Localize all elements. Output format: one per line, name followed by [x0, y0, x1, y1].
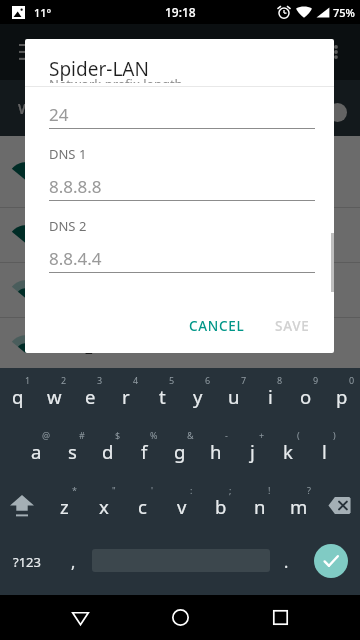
staticText: t	[159, 384, 166, 409]
staticText: Spider-LAN	[54, 153, 133, 173]
button[interactable]: @	[18, 423, 54, 478]
staticText: Spider-LAN	[49, 56, 149, 82]
staticText: ?	[307, 484, 311, 496]
staticText: p	[336, 384, 348, 409]
button[interactable]: CANCEL	[181, 309, 253, 343]
button[interactable]: Back	[58, 595, 102, 640]
staticText: o	[300, 384, 312, 409]
staticText: -	[225, 429, 228, 441]
staticText: 5	[169, 374, 175, 386]
button[interactable]: 3	[72, 368, 108, 423]
button[interactable]: Backspace	[318, 478, 360, 533]
button[interactable]: ,	[54, 533, 92, 588]
staticText: 4	[133, 374, 139, 386]
staticText: n	[254, 494, 266, 519]
staticText: )	[333, 429, 336, 441]
button[interactable]: 2	[36, 368, 72, 423]
staticText: u	[228, 384, 240, 409]
staticText: k	[283, 439, 293, 464]
staticText: $	[115, 429, 121, 441]
staticText: .	[284, 551, 289, 573]
staticText: :	[190, 484, 193, 496]
staticText: q	[12, 384, 24, 409]
staticText: 8	[277, 374, 283, 386]
staticText: m	[290, 494, 308, 519]
staticText: c	[138, 494, 147, 519]
staticText: @	[42, 429, 51, 441]
staticText: g	[174, 439, 186, 464]
staticText: 19:18	[165, 4, 196, 20]
button[interactable]: SAVE	[267, 309, 318, 343]
staticText: DNS 1	[49, 145, 87, 163]
staticText: Wi-Fi	[18, 98, 53, 118]
button[interactable]: More options	[320, 36, 352, 68]
button[interactable]: #	[54, 423, 90, 478]
staticText: h	[210, 439, 222, 464]
button[interactable]: 0	[324, 368, 360, 423]
staticText: x	[99, 494, 109, 519]
staticText: ;	[229, 484, 232, 496]
staticText: 2	[61, 374, 67, 386]
button[interactable]: )	[306, 423, 342, 478]
button[interactable]: $	[90, 423, 126, 478]
staticText: ?123	[13, 553, 41, 571]
staticText: 7	[241, 374, 247, 386]
staticText: r	[122, 384, 130, 409]
staticText: 3	[97, 374, 103, 386]
button[interactable]: !	[240, 478, 279, 533]
button[interactable]: *	[44, 478, 84, 533]
staticText: #	[79, 429, 85, 441]
button[interactable]: ;	[201, 478, 240, 533]
button[interactable]: &	[162, 423, 198, 478]
staticText: s	[68, 439, 77, 464]
staticText: b	[215, 494, 227, 519]
button[interactable]: Home	[158, 595, 202, 640]
button[interactable]: 7	[216, 368, 252, 423]
staticText: "	[112, 484, 116, 496]
staticText: CANCEL	[189, 317, 245, 335]
button[interactable]: "	[84, 478, 123, 533]
staticText: SAVE	[275, 317, 310, 335]
button[interactable]: Shift	[0, 478, 44, 533]
staticText: 9	[313, 374, 319, 386]
button[interactable]: 5	[144, 368, 180, 423]
staticText: l	[322, 439, 327, 464]
button[interactable]: Recent apps	[258, 595, 302, 640]
button[interactable]: 6	[180, 368, 216, 423]
staticText: TP-Link_4A2	[54, 391, 139, 411]
button[interactable]: :	[162, 478, 201, 533]
staticText: y	[193, 384, 203, 409]
button[interactable]: +	[234, 423, 270, 478]
staticText: w	[47, 384, 62, 409]
staticText: Cafe_Free	[54, 336, 123, 356]
staticText: 6	[205, 374, 211, 386]
button[interactable]: %	[126, 423, 162, 478]
button[interactable]: '	[123, 478, 162, 533]
button[interactable]: 9	[288, 368, 324, 423]
button[interactable]: 1	[0, 368, 36, 423]
staticText: f	[141, 439, 148, 464]
button[interactable]: ?	[279, 478, 318, 533]
button[interactable]: -	[198, 423, 234, 478]
staticText: 8.8.8.8	[49, 175, 102, 198]
button[interactable]: .	[270, 533, 302, 588]
staticText: 0	[349, 374, 355, 386]
staticText: '	[151, 484, 154, 496]
staticText: !	[268, 484, 271, 496]
staticText: i	[268, 384, 273, 409]
button[interactable]: ?123	[0, 533, 54, 588]
staticText: d	[102, 439, 114, 464]
staticText: 1	[25, 374, 31, 386]
staticText: j	[250, 439, 255, 464]
button[interactable]: 8	[252, 368, 288, 423]
button[interactable]: 4	[108, 368, 144, 423]
button[interactable]: Done	[314, 544, 348, 578]
staticText: *	[72, 484, 77, 496]
staticText: Connected	[54, 175, 115, 191]
staticText: z	[60, 494, 69, 519]
staticText: &	[187, 429, 194, 441]
button[interactable]: Navigation menu	[12, 36, 44, 68]
button[interactable]: (	[270, 423, 306, 478]
staticText: 11°	[34, 5, 52, 20]
